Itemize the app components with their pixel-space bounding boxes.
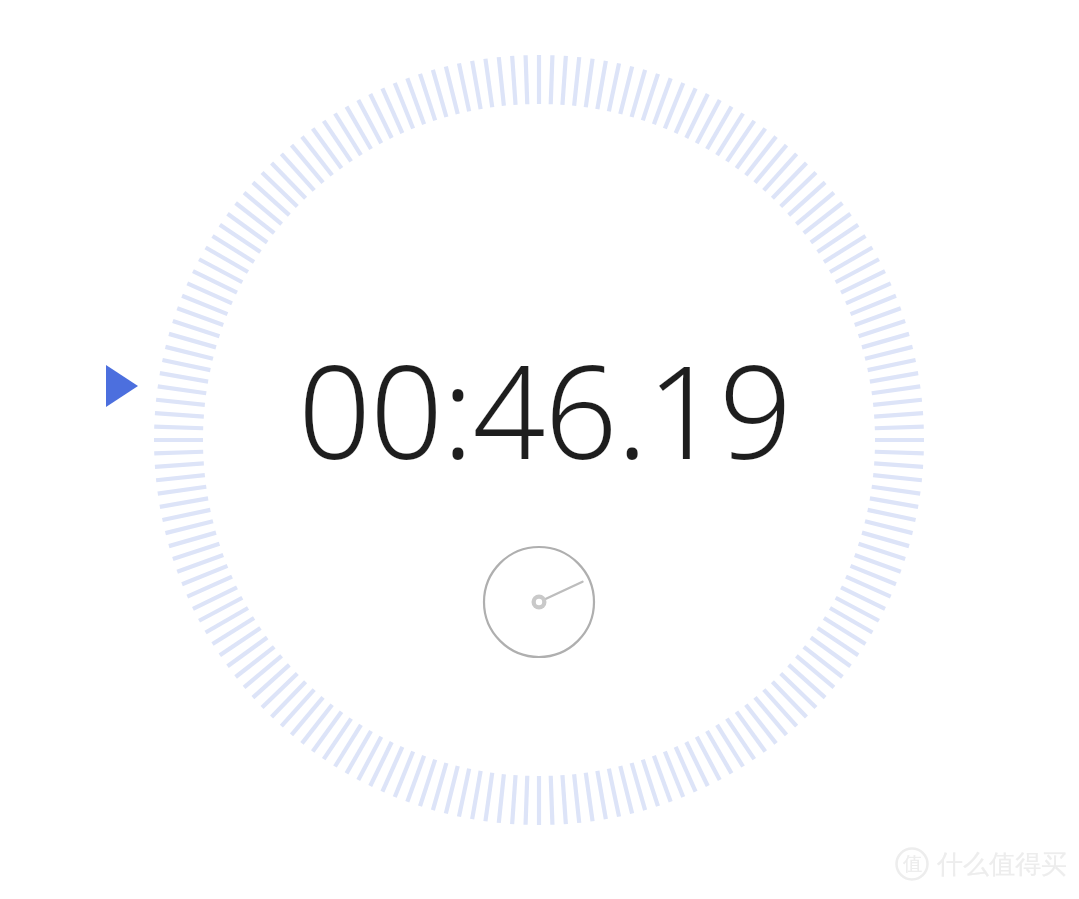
staticText: 值 bbox=[903, 852, 922, 876]
staticText: 什么值得买 bbox=[937, 848, 1067, 881]
staticText: 00:46.19 bbox=[298, 322, 791, 496]
button[interactable]: Stopwatch dial bbox=[0, 0, 1079, 899]
